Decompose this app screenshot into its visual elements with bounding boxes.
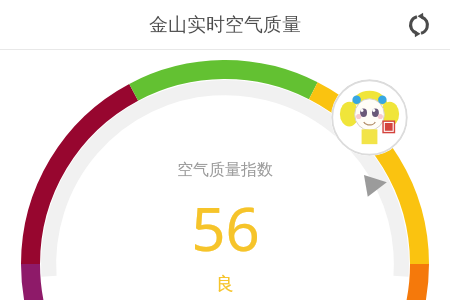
staticText: 空气质量指数 [177, 160, 273, 180]
staticText: 56 [191, 187, 260, 269]
staticText: 金山实时空气质量 [149, 13, 301, 37]
staticText: 良 [216, 273, 234, 296]
button[interactable]: Air quality mascot [331, 79, 408, 156]
button[interactable]: Refresh [398, 4, 440, 46]
